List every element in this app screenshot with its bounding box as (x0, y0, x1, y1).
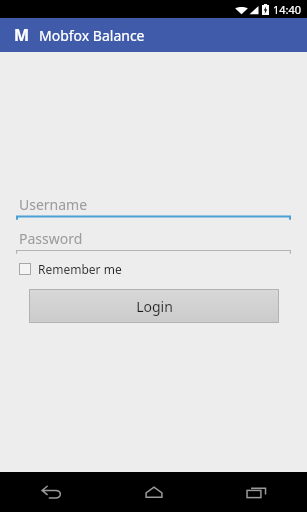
staticText: Login (136, 297, 173, 316)
button[interactable]: Login (29, 289, 279, 323)
staticText: Remember me (38, 261, 122, 277)
staticText: M (14, 24, 30, 46)
button[interactable]: Recent apps (205, 472, 307, 512)
button[interactable]: Remember me (19, 258, 122, 280)
staticText: 14:40 (273, 2, 302, 17)
button[interactable]: Home (103, 472, 205, 512)
staticText: Mobfox Balance (39, 26, 145, 45)
staticText: Password (19, 229, 83, 248)
button[interactable]: Password (16, 228, 291, 254)
button[interactable]: Back (0, 472, 103, 512)
staticText: Username (19, 195, 88, 214)
button[interactable]: Username (16, 194, 291, 220)
